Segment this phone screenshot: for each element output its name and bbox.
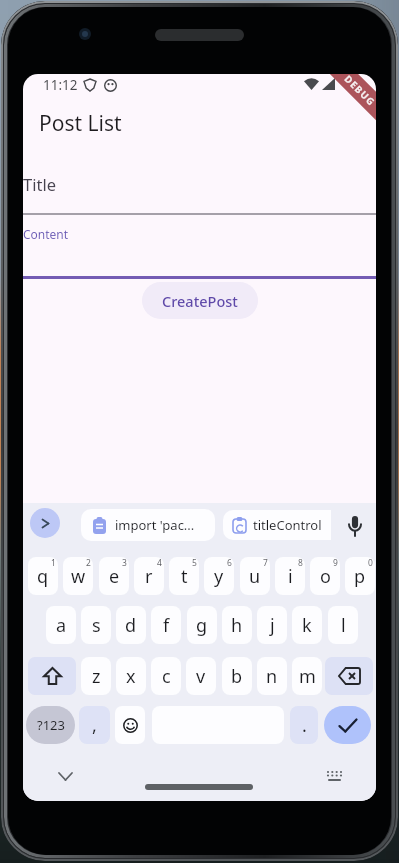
staticText: DEBUG [342, 74, 376, 109]
button[interactable]: m [292, 657, 322, 695]
button[interactable]: titleControl [223, 510, 331, 540]
staticText: 11:12 [43, 76, 78, 94]
button[interactable] [30, 508, 60, 538]
staticText: 7 [263, 557, 268, 569]
button[interactable]: h [222, 606, 252, 644]
staticText: c [162, 664, 171, 689]
staticText: e [109, 564, 120, 589]
staticText: o [320, 564, 331, 589]
staticText: v [196, 664, 206, 689]
staticText: import 'pac... [115, 516, 195, 534]
staticText: Title [23, 173, 56, 195]
button[interactable]: CreatePost [142, 282, 258, 319]
button[interactable]: import 'pac... [81, 509, 215, 541]
staticText: , [92, 713, 97, 738]
staticText: p [354, 564, 366, 589]
staticText: y [214, 564, 224, 589]
button[interactable]: d [116, 606, 146, 644]
button[interactable]: k [292, 606, 322, 644]
button[interactable] [115, 706, 145, 744]
staticText: m [299, 664, 316, 689]
button[interactable]: ?123 [26, 706, 75, 744]
button[interactable] [325, 657, 373, 695]
button[interactable]: j [257, 606, 287, 644]
button[interactable] [23, 214, 376, 276]
button[interactable]: r [134, 557, 164, 595]
staticText: 9 [333, 557, 338, 569]
staticText: . [302, 713, 307, 738]
staticText: ?123 [37, 716, 65, 734]
staticText: z [92, 664, 101, 689]
button[interactable]: , [79, 706, 110, 744]
staticText: g [196, 613, 208, 638]
staticText: q [37, 564, 49, 589]
button[interactable]: y [204, 557, 234, 595]
staticText: u [249, 564, 261, 589]
button[interactable]: e [99, 557, 129, 595]
staticText: 1 [51, 557, 56, 569]
button[interactable]: n [257, 657, 287, 695]
staticText: 5 [192, 557, 197, 569]
staticText: 4 [157, 557, 162, 569]
button[interactable]: o [310, 557, 340, 595]
staticText: a [56, 613, 67, 638]
button[interactable]: g [187, 606, 217, 644]
staticText: f [163, 613, 170, 638]
button[interactable]: c [151, 657, 181, 695]
button[interactable] [326, 770, 343, 783]
button[interactable]: b [222, 657, 252, 695]
staticText: Content [23, 226, 69, 242]
staticText: x [126, 664, 136, 689]
button[interactable]: u [240, 557, 270, 595]
staticText: i [288, 564, 293, 589]
button[interactable]: q [28, 557, 58, 595]
button[interactable]: a [46, 606, 76, 644]
button[interactable]: v [186, 657, 216, 695]
staticText: t [181, 564, 188, 589]
button[interactable]: i [275, 557, 305, 595]
button[interactable]: s [81, 606, 111, 644]
staticText: b [231, 664, 243, 689]
button[interactable] [324, 706, 371, 744]
staticText: d [125, 613, 137, 638]
button[interactable]: l [328, 606, 358, 644]
button[interactable]: t [169, 557, 199, 595]
button[interactable]: p [345, 557, 375, 595]
staticText: CreatePost [162, 291, 238, 311]
button[interactable]: z [81, 657, 111, 695]
button[interactable]: . [290, 706, 318, 744]
staticText: 0 [368, 557, 373, 569]
staticText: l [341, 613, 346, 638]
button[interactable] [28, 657, 76, 695]
staticText: 3 [122, 557, 127, 569]
staticText: 8 [298, 557, 303, 569]
button[interactable] [348, 516, 362, 537]
staticText: titleControl [253, 516, 322, 534]
staticText: w [71, 564, 86, 589]
staticText: h [231, 613, 243, 638]
staticText: s [92, 613, 101, 638]
button[interactable]: w [63, 557, 93, 595]
button[interactable]: f [151, 606, 181, 644]
staticText: n [266, 664, 278, 689]
staticText: Post List [39, 109, 122, 138]
button[interactable]: x [116, 657, 146, 695]
button[interactable] [59, 773, 72, 780]
staticText: 2 [86, 557, 91, 569]
staticText: j [270, 613, 275, 638]
staticText: 6 [227, 557, 232, 569]
staticText: r [145, 564, 153, 589]
staticText: k [302, 613, 312, 638]
